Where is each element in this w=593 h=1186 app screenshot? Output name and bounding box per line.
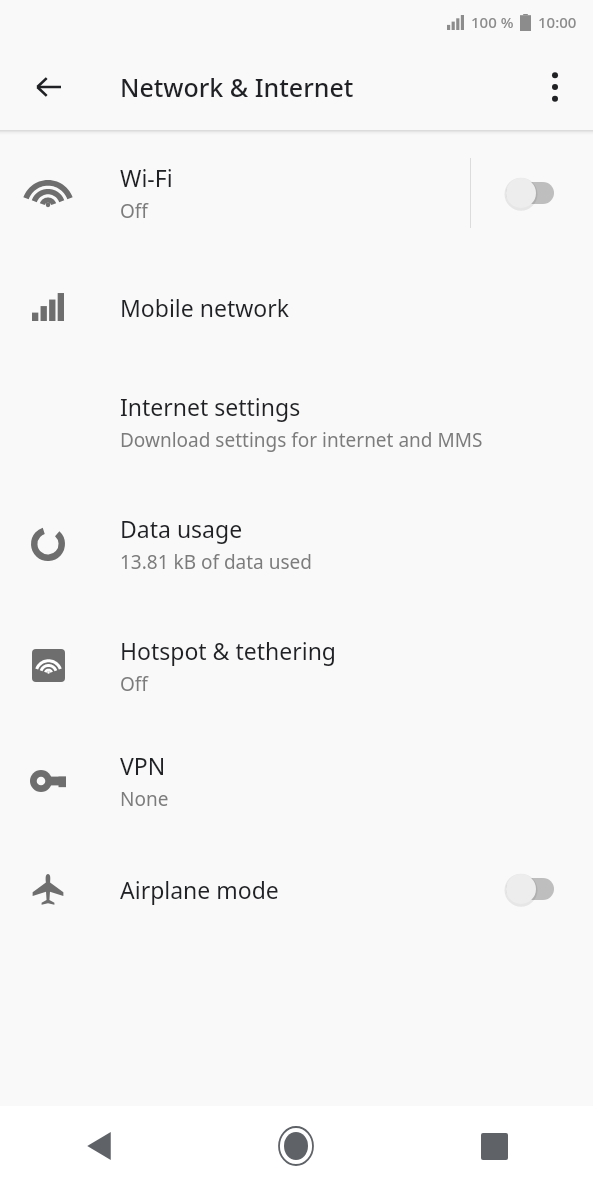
button[interactable]: Internet settings (0, 363, 593, 481)
button[interactable]: VPN (0, 725, 593, 837)
staticText: Internet settings (120, 391, 301, 422)
staticText: Airplane mode (120, 874, 279, 905)
button[interactable]: Home (197, 1106, 395, 1186)
button[interactable]: Back (20, 59, 76, 115)
button[interactable]: Back (0, 1106, 197, 1186)
staticText: Wi-Fi (120, 162, 173, 193)
staticText: Download settings for internet and MMS (120, 427, 483, 453)
staticText: Off (120, 671, 148, 697)
staticText: 100 % (471, 12, 514, 32)
button[interactable]: Data usage (0, 481, 593, 606)
button[interactable]: More options (529, 61, 581, 113)
button[interactable]: Recent apps (395, 1106, 593, 1186)
staticText: None (120, 786, 169, 812)
button[interactable]: Toggle Airplane mode (502, 864, 572, 914)
button[interactable]: Airplane mode (0, 837, 593, 941)
staticText: Network & Internet (120, 70, 354, 104)
staticText: Off (120, 198, 148, 224)
staticText: VPN (120, 750, 166, 781)
button[interactable]: Wi-Fi (0, 135, 593, 251)
staticText: Data usage (120, 513, 243, 544)
staticText: 13.81 kB of data used (120, 549, 312, 575)
button[interactable]: Toggle Wi-Fi (502, 168, 572, 218)
staticText: Hotspot & tethering (120, 635, 336, 666)
staticText: 10:00 (538, 12, 577, 32)
button[interactable]: Hotspot & tethering (0, 606, 593, 725)
staticText: Mobile network (120, 292, 290, 323)
button[interactable]: Mobile network (0, 251, 593, 363)
